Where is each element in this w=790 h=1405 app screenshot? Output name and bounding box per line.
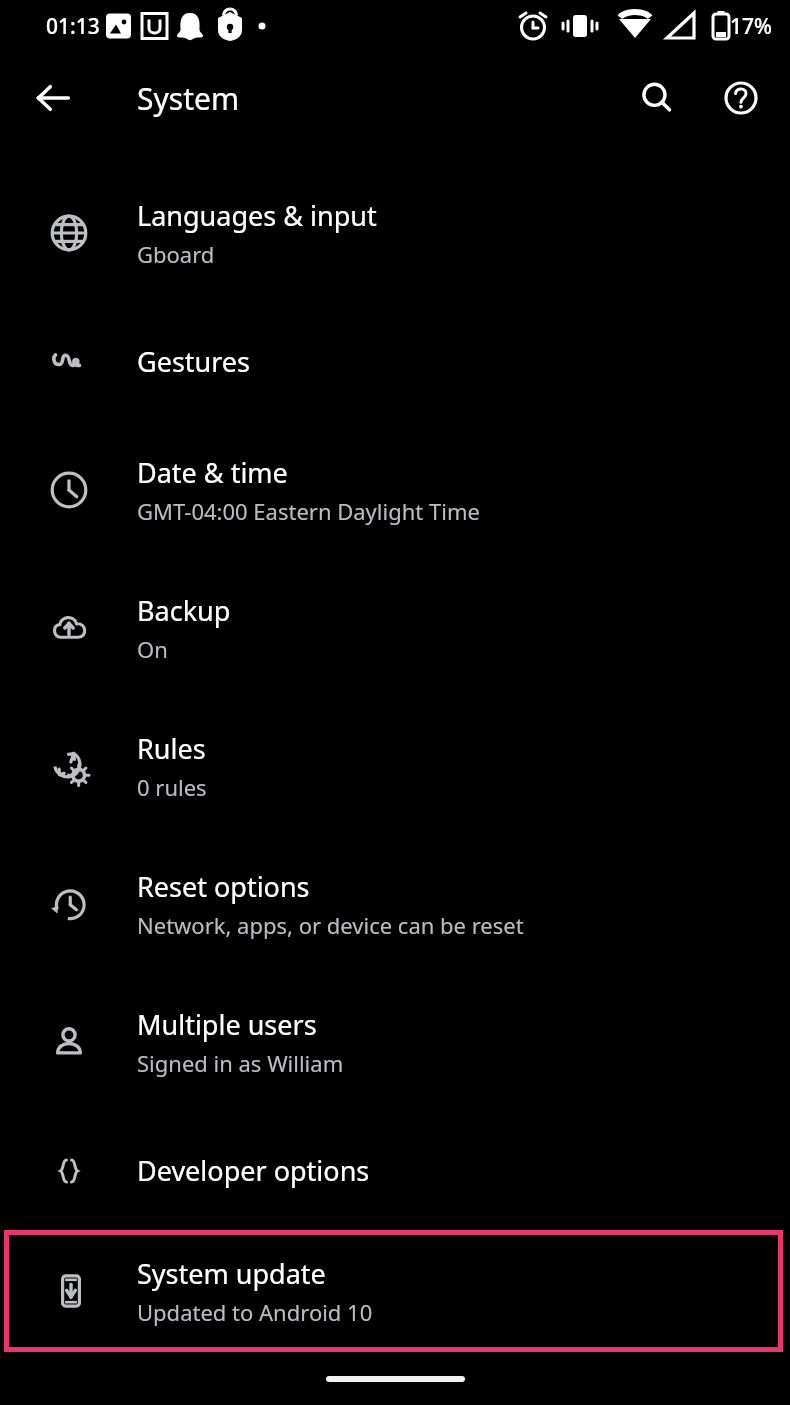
staticText: 0 rules bbox=[137, 772, 207, 802]
staticText: Developer options bbox=[137, 1152, 370, 1189]
staticText: System bbox=[137, 78, 239, 119]
staticText: Backup bbox=[137, 592, 231, 629]
staticText: 17% bbox=[730, 12, 772, 41]
staticText: Updated to Android 10 bbox=[137, 1297, 373, 1327]
button[interactable]: System update bbox=[4, 1230, 783, 1352]
staticText: GMT-04:00 Eastern Daylight Time bbox=[137, 496, 480, 526]
button[interactable]: Back bbox=[18, 63, 88, 133]
staticText: System update bbox=[137, 1255, 326, 1292]
button[interactable]: Developer options bbox=[0, 1111, 790, 1230]
staticText: Rules bbox=[137, 730, 206, 767]
button[interactable]: Search bbox=[622, 63, 692, 133]
staticText: Network, apps, or device can be reset bbox=[137, 910, 524, 940]
button[interactable]: Gestures bbox=[0, 302, 790, 421]
staticText: Gestures bbox=[137, 343, 251, 380]
staticText: Languages & input bbox=[137, 197, 377, 234]
staticText: On bbox=[137, 634, 168, 664]
button[interactable]: Date & time bbox=[0, 421, 790, 559]
button[interactable]: Languages & input bbox=[0, 164, 790, 302]
staticText: Gboard bbox=[137, 239, 215, 269]
staticText: Signed in as William bbox=[137, 1048, 344, 1078]
button[interactable]: Help bbox=[706, 63, 776, 133]
button[interactable]: Rules bbox=[0, 697, 790, 835]
staticText: Reset options bbox=[137, 868, 310, 905]
staticText: Multiple users bbox=[137, 1006, 317, 1043]
button[interactable]: Backup bbox=[0, 559, 790, 697]
staticText: Date & time bbox=[137, 454, 288, 491]
button[interactable]: Reset options bbox=[0, 835, 790, 973]
staticText: 01:13 bbox=[46, 12, 100, 41]
button[interactable]: Multiple users bbox=[0, 973, 790, 1111]
